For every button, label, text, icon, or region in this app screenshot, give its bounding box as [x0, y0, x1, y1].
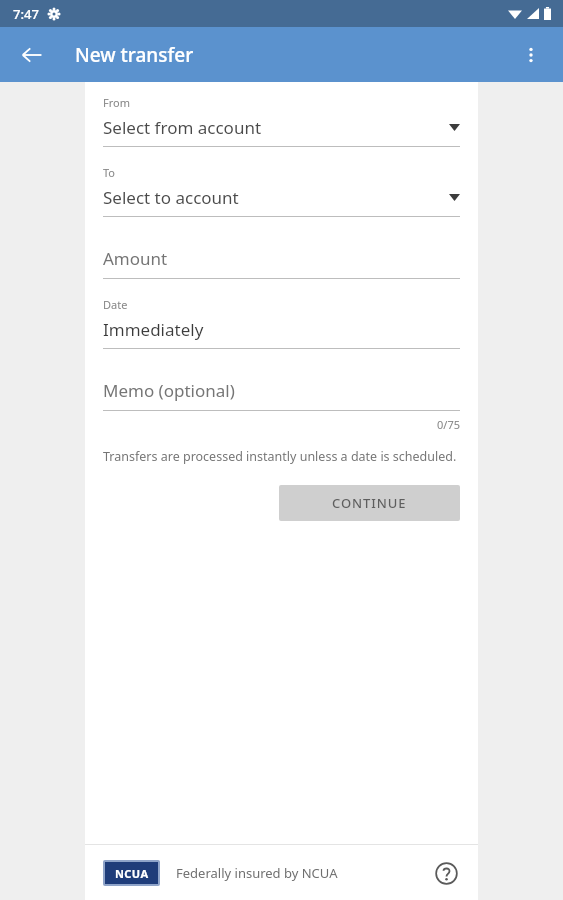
button[interactable]: To [103, 165, 460, 217]
staticText: Amount [103, 247, 168, 270]
button[interactable]: CONTINUE [279, 485, 460, 521]
button[interactable]: More options [507, 31, 555, 79]
staticText: Transfers are processed instantly unless… [103, 448, 457, 465]
staticText: CONTINUE [332, 494, 407, 512]
staticText: Memo (optional) [103, 379, 235, 402]
staticText: From [103, 95, 130, 110]
staticText: To [103, 165, 116, 180]
staticText: New transfer [75, 42, 194, 68]
staticText: Federally insured by NCUA [176, 864, 338, 882]
button[interactable]: Date [103, 297, 460, 349]
staticText: 7:47 [13, 5, 39, 23]
staticText: Select to account [103, 186, 239, 209]
button[interactable]: Amount [103, 247, 460, 279]
button[interactable]: Memo (optional) [103, 379, 460, 411]
button[interactable]: Back [8, 31, 56, 79]
button[interactable]: From [103, 95, 460, 147]
staticText: NCUA [115, 866, 149, 881]
staticText: 0/75 [437, 417, 460, 432]
staticText: Immediately [103, 318, 204, 341]
staticText: Date [103, 297, 128, 312]
staticText: Select from account [103, 116, 262, 139]
button[interactable]: Help [426, 853, 466, 893]
